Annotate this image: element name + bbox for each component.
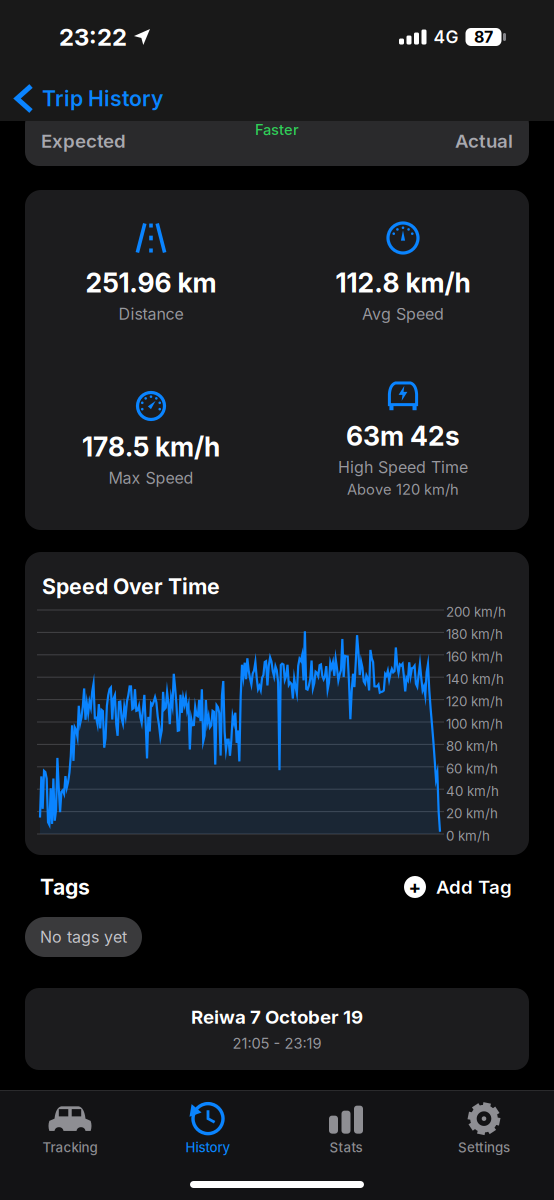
staticText: Actual bbox=[455, 130, 513, 152]
staticText: 160 km/h bbox=[446, 649, 503, 664]
staticText: Avg Speed bbox=[362, 304, 444, 323]
staticText: Distance bbox=[118, 304, 183, 323]
staticText: No tags yet bbox=[40, 928, 127, 946]
staticText: 180 km/h bbox=[446, 626, 503, 642]
button[interactable]: Reiwa 7 October 19 bbox=[25, 988, 529, 1070]
staticText: Trip History bbox=[42, 86, 163, 111]
staticText: Add Tag bbox=[436, 876, 512, 898]
staticText: Settings bbox=[458, 1140, 510, 1155]
button[interactable]: Tracking bbox=[1, 1096, 139, 1160]
staticText: 112.8 km/h bbox=[335, 267, 470, 298]
staticText: 120 km/h bbox=[446, 694, 503, 709]
staticText: 21:05 - 23:19 bbox=[232, 1035, 321, 1052]
staticText: Stats bbox=[329, 1140, 362, 1155]
staticText: 80 km/h bbox=[446, 738, 498, 754]
staticText: + bbox=[408, 876, 421, 898]
staticText: 140 km/h bbox=[446, 671, 504, 687]
staticText: Tags bbox=[40, 874, 90, 900]
button[interactable]: Settings bbox=[415, 1096, 553, 1160]
staticText: 100 km/h bbox=[446, 716, 503, 732]
staticText: 251.96 km bbox=[85, 267, 216, 298]
staticText: 63m 42s bbox=[346, 420, 460, 452]
button[interactable]: Stats bbox=[277, 1096, 415, 1160]
staticText: 178.5 km/h bbox=[82, 431, 220, 462]
staticText: 20 km/h bbox=[446, 806, 498, 821]
staticText: Speed Over Time bbox=[42, 574, 220, 599]
staticText: 0 km/h bbox=[446, 828, 490, 844]
button[interactable]: History bbox=[139, 1096, 277, 1160]
staticText: Above 120 km/h bbox=[347, 481, 459, 498]
staticText: 87 bbox=[474, 28, 493, 46]
staticText: History bbox=[185, 1140, 230, 1155]
staticText: High Speed Time bbox=[338, 458, 468, 477]
staticText: 60 km/h bbox=[446, 761, 498, 776]
staticText: Tracking bbox=[42, 1140, 97, 1155]
staticText: 40 km/h bbox=[446, 783, 499, 799]
button[interactable]: Add Tag bbox=[404, 876, 554, 898]
staticText: Expected bbox=[41, 130, 126, 152]
staticText: Reiwa 7 October 19 bbox=[191, 1006, 363, 1028]
staticText: 23:22 bbox=[59, 23, 127, 51]
staticText: Max Speed bbox=[108, 468, 193, 487]
button[interactable]: Back bbox=[0, 60, 554, 121]
staticText: 200 km/h bbox=[446, 604, 506, 620]
staticText: Faster bbox=[255, 121, 299, 138]
staticText: 4G bbox=[433, 27, 458, 47]
